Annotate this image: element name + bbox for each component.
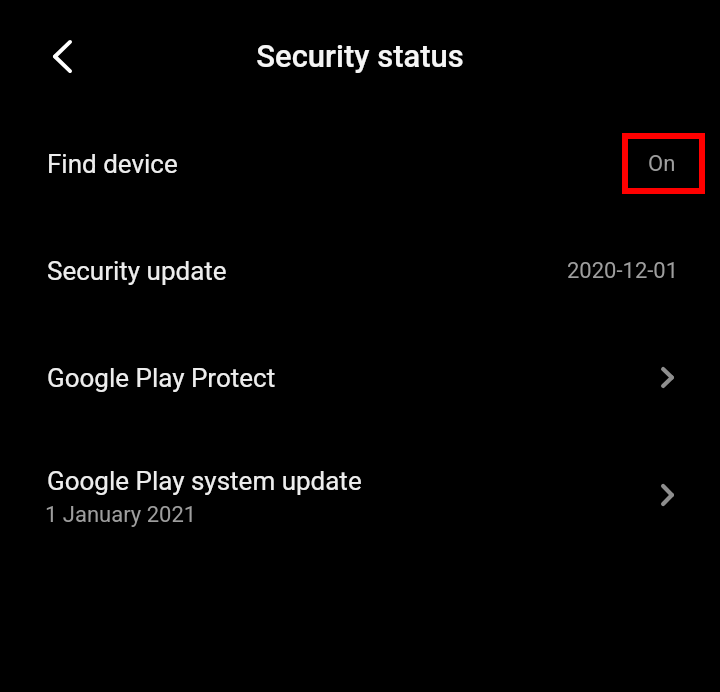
staticText: 2020-12-01 — [567, 258, 679, 284]
button[interactable]: Find device — [0, 112, 720, 219]
staticText: Google Play Protect — [47, 363, 276, 393]
staticText: Security status — [0, 38, 720, 74]
button[interactable]: Navigate up — [29, 23, 95, 89]
staticText: On — [648, 151, 676, 177]
button[interactable]: Security update — [0, 219, 720, 326]
staticText: Find device — [47, 149, 178, 179]
button[interactable]: Google Play system update — [0, 433, 720, 553]
button[interactable]: Google Play Protect — [0, 326, 720, 433]
staticText: 1 January 2021 — [45, 502, 197, 528]
staticText: Security update — [47, 256, 227, 286]
staticText: Google Play system update — [47, 466, 362, 496]
